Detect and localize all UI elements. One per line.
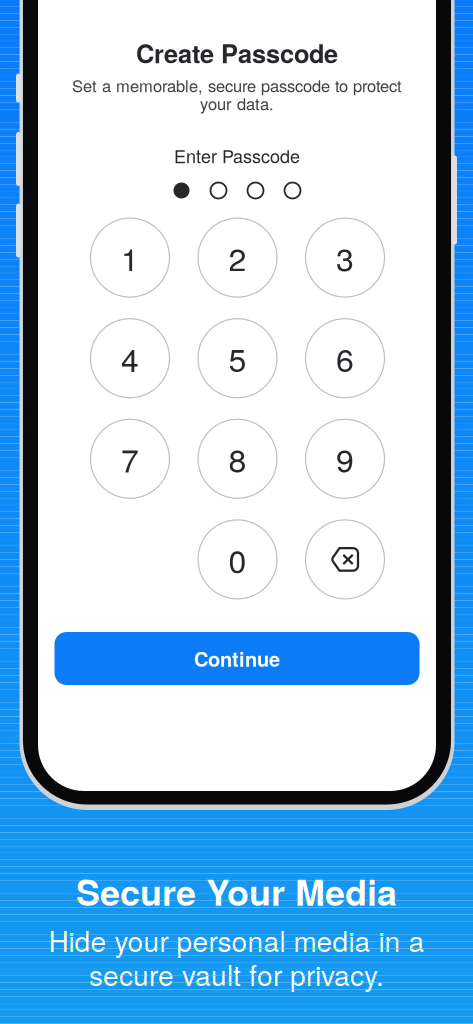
button[interactable]: 7 — [90, 419, 169, 498]
button[interactable]: 0 — [198, 520, 277, 599]
staticText: 8 — [228, 436, 246, 482]
staticText: 4 — [121, 335, 139, 381]
staticText: secure vault for privacy. — [89, 954, 384, 994]
button[interactable]: 1 — [90, 218, 169, 297]
staticText: 1 — [121, 235, 139, 280]
staticText: 5 — [228, 335, 246, 381]
staticText: 6 — [336, 335, 354, 381]
staticText: 2 — [228, 235, 246, 280]
staticText: 3 — [336, 235, 354, 280]
button[interactable]: Continue — [54, 632, 419, 685]
button[interactable]: 4 — [90, 319, 169, 398]
staticText: 9 — [336, 436, 354, 482]
staticText: Secure Your Media — [76, 865, 397, 917]
button[interactable]: Delete — [305, 520, 384, 599]
button[interactable]: 8 — [198, 419, 277, 498]
staticText: Hide your personal media in a — [48, 920, 424, 960]
button[interactable]: 2 — [198, 218, 277, 297]
staticText: 0 — [228, 536, 246, 582]
staticText: Enter Passcode — [174, 143, 300, 168]
staticText: Set a memorable, secure passcode to prot… — [72, 73, 402, 97]
staticText: your data. — [200, 91, 274, 115]
button[interactable]: 5 — [198, 319, 277, 398]
button[interactable]: 9 — [305, 419, 384, 498]
button[interactable]: 3 — [305, 218, 384, 297]
staticText: Continue — [194, 644, 280, 673]
button[interactable]: 6 — [305, 319, 384, 398]
staticText: 7 — [121, 436, 139, 482]
staticText: Create Passcode — [136, 35, 338, 71]
